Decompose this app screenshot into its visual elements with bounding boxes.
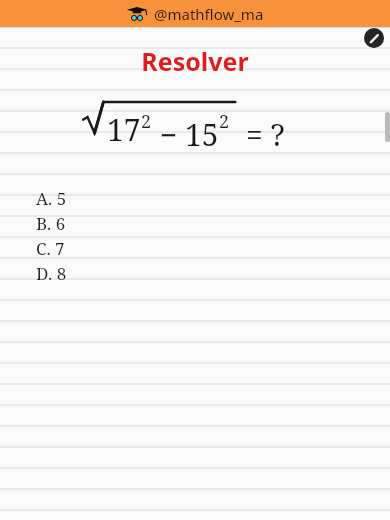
staticText: − xyxy=(152,114,185,152)
button[interactable]: A. 5 xyxy=(36,186,126,211)
staticText: B. 6 xyxy=(36,212,66,235)
button[interactable]: D. 8 xyxy=(36,261,126,286)
button[interactable]: B. 6 xyxy=(36,211,126,236)
staticText: 2 xyxy=(141,109,152,134)
button[interactable]: @mathflow_ma xyxy=(0,0,390,27)
staticText: = ? xyxy=(246,114,285,152)
staticText: C. 7 xyxy=(36,237,65,260)
button[interactable]: Edit xyxy=(364,28,384,48)
staticText: @mathflow_ma xyxy=(154,4,264,24)
staticText: 17 xyxy=(107,109,141,150)
staticText: 15 xyxy=(185,114,219,152)
staticText: 2 xyxy=(219,109,230,134)
staticText: D. 8 xyxy=(36,262,67,285)
button[interactable]: C. 7 xyxy=(36,236,126,261)
staticText: Resolver xyxy=(141,44,249,78)
staticText: A. 5 xyxy=(36,187,67,210)
